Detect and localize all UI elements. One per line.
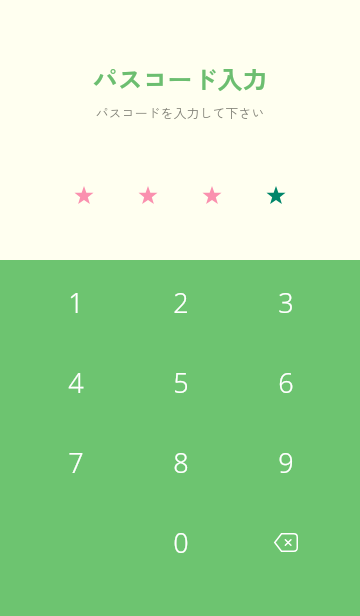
staticText: 6	[278, 364, 294, 401]
staticText: パスコード入力	[92, 60, 268, 96]
staticText: 8	[173, 444, 189, 481]
staticText: パスコードを入力して下さい	[95, 103, 265, 122]
staticText: 9	[278, 444, 294, 481]
staticText: 4	[68, 364, 84, 401]
staticText: 1	[68, 284, 84, 321]
button[interactable]: 1	[23, 262, 128, 342]
button[interactable]: 9	[233, 422, 338, 502]
staticText: 3	[278, 284, 294, 321]
button[interactable]: 7	[23, 422, 128, 502]
staticText: 5	[173, 364, 189, 401]
button[interactable]: 0	[128, 502, 233, 582]
button[interactable]: 2	[128, 262, 233, 342]
staticText: 7	[68, 444, 84, 481]
button[interactable]: 3	[233, 262, 338, 342]
button[interactable]: 6	[233, 342, 338, 422]
button[interactable]: 4	[23, 342, 128, 422]
button[interactable]: Backspace, delete last digit	[233, 502, 338, 582]
button[interactable]: 8	[128, 422, 233, 502]
staticText: 2	[173, 284, 189, 321]
button[interactable]: 5	[128, 342, 233, 422]
staticText: 0	[173, 524, 189, 561]
